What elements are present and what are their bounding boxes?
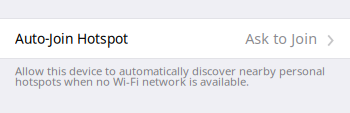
staticText: Ask to Join	[245, 29, 317, 48]
staticText: Allow this device to automatically disco…	[15, 65, 325, 87]
button[interactable]: Auto-Join Hotspot	[0, 19, 350, 58]
staticText: Auto-Join Hotspot	[15, 29, 128, 48]
